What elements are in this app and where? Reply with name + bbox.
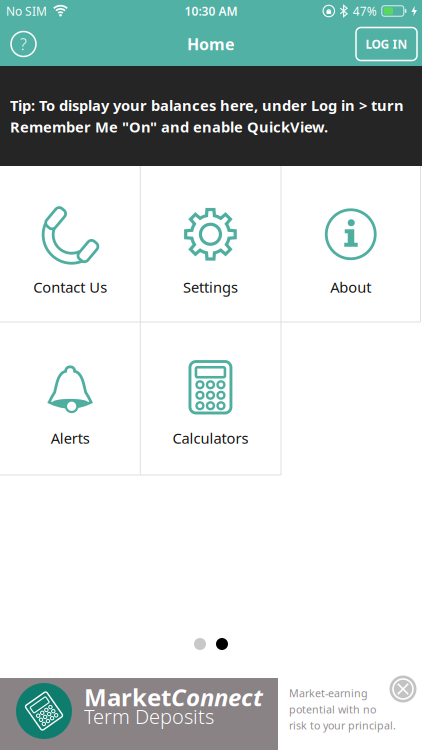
staticText: 47%	[353, 3, 377, 19]
staticText: risk to your principal.	[289, 718, 396, 732]
staticText: Alerts	[51, 428, 90, 448]
staticText: LOG IN	[365, 36, 407, 52]
staticText: About	[330, 277, 371, 297]
staticText: potential with no	[289, 702, 376, 716]
staticText: Term Deposits	[84, 703, 214, 729]
button[interactable]: Settings	[140, 166, 281, 322]
button[interactable]: Contact Us	[0, 166, 140, 322]
staticText: No SIM	[6, 3, 47, 19]
staticText: Home	[187, 33, 235, 55]
button[interactable]: About	[281, 166, 421, 322]
staticText: Remember Me "On" and enable QuickView.	[10, 117, 328, 136]
staticText: 10:30 AM	[184, 3, 237, 19]
staticText: MarketConnect	[84, 681, 263, 713]
staticText: Settings	[183, 277, 238, 297]
button[interactable]: Help	[11, 31, 36, 56]
staticText: Market-earning	[289, 686, 368, 700]
button[interactable]: Alerts	[0, 322, 140, 475]
button[interactable]: Calculators	[140, 322, 281, 475]
button[interactable]: Close	[389, 675, 416, 702]
staticText: Contact Us	[33, 277, 107, 297]
staticText: Calculators	[172, 428, 248, 448]
button[interactable]: MarketConnect Term Deposits	[0, 678, 278, 750]
staticText: Tip: To display your balances here, unde…	[10, 95, 404, 115]
button[interactable]: LOG IN	[356, 27, 417, 60]
staticText: ?	[20, 33, 27, 55]
